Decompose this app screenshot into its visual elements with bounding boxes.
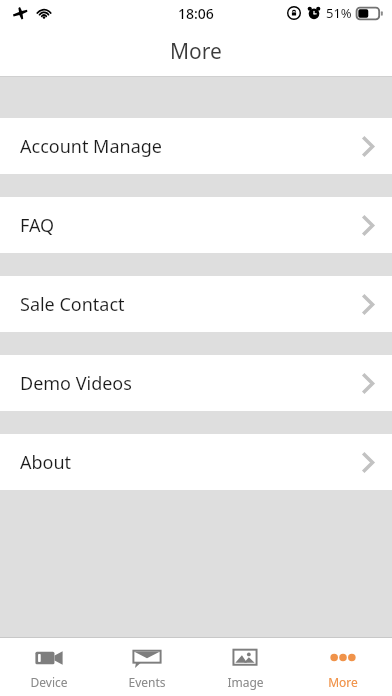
- staticText: FAQ: [20, 213, 363, 238]
- staticText: More: [328, 674, 358, 690]
- button[interactable]: About: [0, 434, 392, 490]
- staticText: Image: [227, 674, 264, 690]
- button[interactable]: Events: [98, 638, 196, 696]
- staticText: Events: [128, 674, 166, 690]
- staticText: Demo Videos: [20, 371, 363, 396]
- button[interactable]: Image: [196, 638, 294, 696]
- staticText: 18:06: [178, 4, 214, 23]
- staticText: Sale Contact: [20, 292, 363, 317]
- button[interactable]: Account Manage: [0, 118, 392, 174]
- staticText: 51%: [326, 4, 352, 22]
- button[interactable]: Device: [0, 638, 98, 696]
- staticText: Account Manage: [20, 134, 363, 159]
- button[interactable]: FAQ: [0, 197, 392, 253]
- button[interactable]: Demo Videos: [0, 355, 392, 411]
- button[interactable]: More: [294, 638, 392, 696]
- staticText: More: [170, 37, 222, 66]
- staticText: About: [20, 450, 363, 475]
- button[interactable]: Sale Contact: [0, 276, 392, 332]
- staticText: Device: [30, 674, 68, 690]
